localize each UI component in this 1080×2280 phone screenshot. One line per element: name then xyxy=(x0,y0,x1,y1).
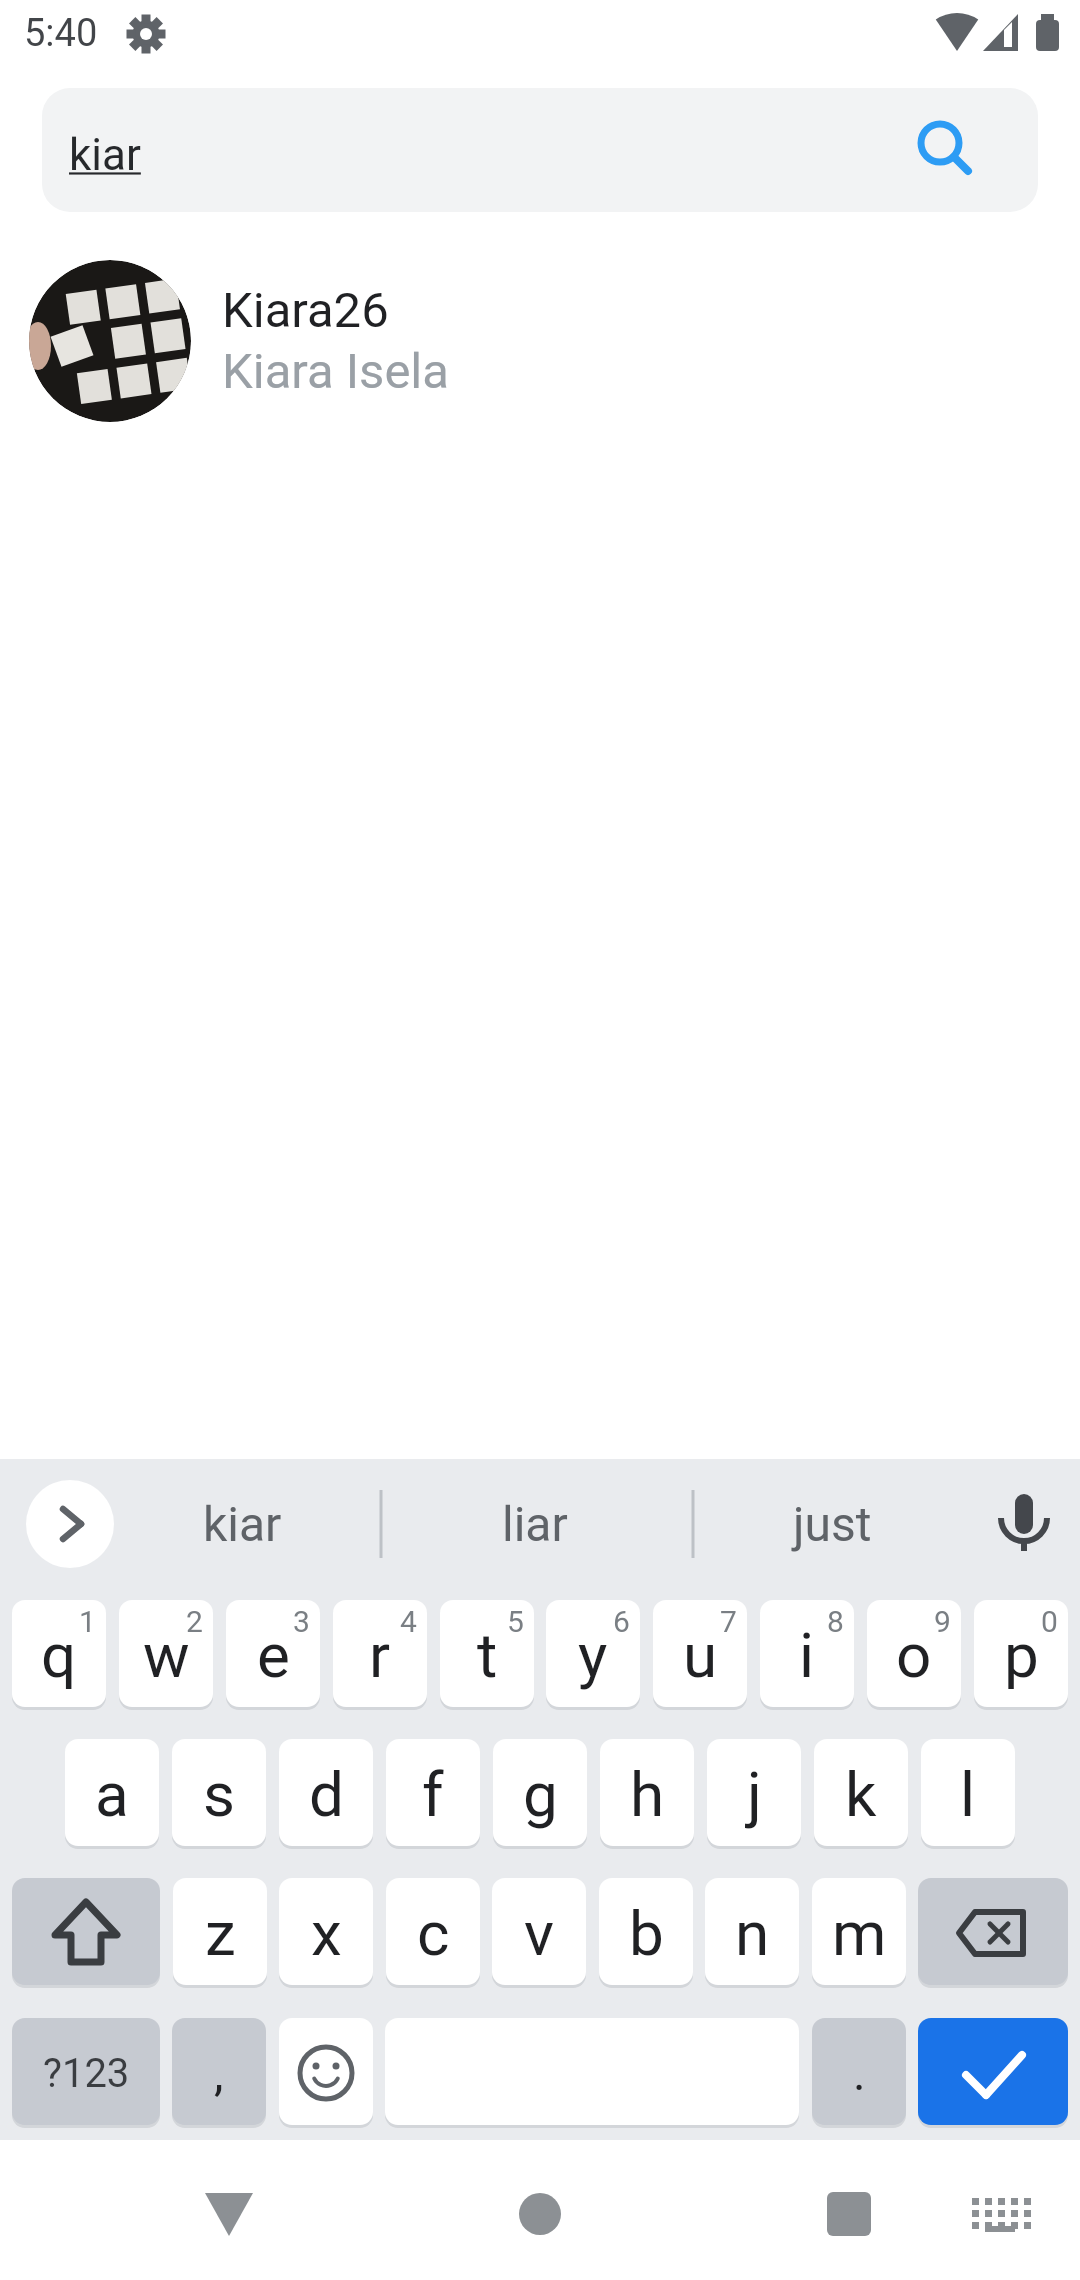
button[interactable]: w xyxy=(119,1600,213,1710)
staticText: n xyxy=(735,1897,770,1970)
staticText: t xyxy=(477,1619,498,1692)
button[interactable]: f xyxy=(386,1739,480,1849)
button[interactable]: ?123 xyxy=(12,2018,160,2128)
staticText: o xyxy=(896,1619,932,1692)
button[interactable]: j xyxy=(707,1739,801,1849)
button[interactable] xyxy=(0,2140,360,2280)
staticText: , xyxy=(214,2045,224,2101)
staticText: d xyxy=(309,1758,344,1831)
button[interactable]: liar xyxy=(440,1459,630,1589)
button[interactable]: q xyxy=(12,1600,106,1710)
staticText: g xyxy=(523,1758,558,1831)
staticText: ?123 xyxy=(43,2050,130,2097)
staticText: e xyxy=(257,1619,290,1692)
button[interactable]: , xyxy=(172,2018,266,2128)
button[interactable] xyxy=(720,2140,1080,2280)
button[interactable]: i xyxy=(760,1600,854,1710)
staticText: Kiara Isela xyxy=(222,343,449,400)
staticText: 9 xyxy=(934,1604,951,1639)
staticText: q xyxy=(41,1619,77,1692)
button[interactable]: e xyxy=(226,1600,320,1710)
staticText: p xyxy=(1004,1619,1039,1692)
staticText: l xyxy=(960,1758,976,1831)
staticText: f xyxy=(422,1758,444,1831)
staticText: 1 xyxy=(79,1604,96,1639)
button[interactable]: l xyxy=(921,1739,1015,1849)
button[interactable]: r xyxy=(333,1600,427,1710)
staticText: 7 xyxy=(720,1604,737,1639)
staticText: kiar xyxy=(69,129,141,181)
button[interactable]: d xyxy=(279,1739,373,1849)
button[interactable] xyxy=(385,2018,799,2128)
button[interactable]: . xyxy=(812,2018,906,2128)
button[interactable] xyxy=(12,1878,160,1988)
staticText: x xyxy=(311,1897,342,1970)
staticText: 5:40 xyxy=(24,11,98,56)
button[interactable]: n xyxy=(705,1878,799,1988)
staticText: z xyxy=(205,1897,236,1970)
button[interactable]: kiar xyxy=(42,88,1038,212)
button[interactable]: o xyxy=(867,1600,961,1710)
button[interactable]: c xyxy=(386,1878,480,1988)
button[interactable]: y xyxy=(546,1600,640,1710)
staticText: 6 xyxy=(613,1604,630,1639)
button[interactable]: m xyxy=(812,1878,906,1988)
staticText: 8 xyxy=(827,1604,844,1639)
staticText: Kiara26 xyxy=(222,282,389,339)
button[interactable]: z xyxy=(173,1878,267,1988)
staticText: a xyxy=(95,1758,129,1831)
staticText: w xyxy=(143,1619,190,1692)
button[interactable]: k xyxy=(814,1739,908,1849)
staticText: k xyxy=(845,1758,877,1831)
button[interactable] xyxy=(918,2018,1068,2128)
staticText: h xyxy=(630,1758,665,1831)
staticText: u xyxy=(683,1619,718,1692)
staticText: b xyxy=(629,1897,664,1970)
button[interactable]: just xyxy=(737,1459,927,1589)
button[interactable]: kiar xyxy=(147,1459,337,1589)
button[interactable]: g xyxy=(493,1739,587,1849)
button[interactable]: v xyxy=(492,1878,586,1988)
staticText: m xyxy=(832,1897,887,1970)
staticText: j xyxy=(747,1758,762,1831)
button[interactable]: p xyxy=(974,1600,1068,1710)
button[interactable]: t xyxy=(440,1600,534,1710)
button[interactable] xyxy=(975,1475,1073,1573)
button[interactable] xyxy=(26,1480,114,1568)
staticText: liar xyxy=(502,1496,568,1552)
staticText: s xyxy=(203,1758,235,1831)
staticText: kiar xyxy=(203,1496,282,1552)
staticText: i xyxy=(799,1619,815,1692)
button[interactable] xyxy=(360,2140,720,2280)
staticText: v xyxy=(524,1897,555,1970)
staticText: 2 xyxy=(186,1604,203,1639)
button[interactable]: a xyxy=(65,1739,159,1849)
staticText: just xyxy=(793,1496,872,1552)
staticText: 5 xyxy=(507,1604,524,1639)
button[interactable]: b xyxy=(599,1878,693,1988)
button[interactable] xyxy=(918,1878,1068,1988)
staticText: 0 xyxy=(1041,1604,1058,1639)
button[interactable]: x xyxy=(279,1878,373,1988)
button[interactable] xyxy=(279,2018,373,2128)
staticText: 3 xyxy=(293,1604,310,1639)
button[interactable] xyxy=(952,2164,1052,2264)
staticText: y xyxy=(578,1619,608,1692)
staticText: c xyxy=(417,1897,450,1970)
button[interactable]: Kiara26 xyxy=(29,260,1080,422)
staticText: r xyxy=(369,1619,391,1692)
button[interactable]: h xyxy=(600,1739,694,1849)
staticText: . xyxy=(853,2045,866,2101)
button[interactable]: u xyxy=(653,1600,747,1710)
button[interactable]: s xyxy=(172,1739,266,1849)
staticText: 4 xyxy=(400,1604,417,1639)
